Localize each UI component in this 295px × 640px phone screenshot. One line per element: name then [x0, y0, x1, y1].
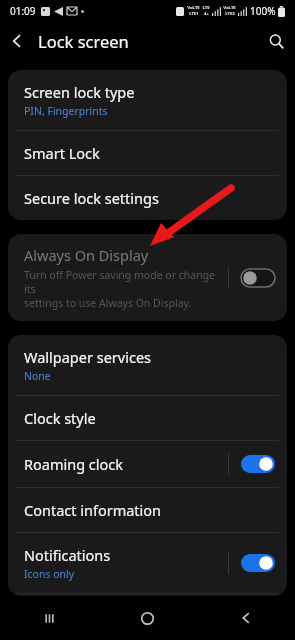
staticText: Turn off Power saving mode or change its: [24, 268, 228, 296]
button[interactable]: Screen lock type: [8, 70, 287, 130]
staticText: settings to use Always On Display.: [24, 296, 192, 310]
button[interactable]: Secure lock settings: [8, 176, 287, 220]
button[interactable]: Recents: [25, 596, 73, 640]
button[interactable]: Back: [0, 24, 34, 58]
staticText: LTE1: [189, 11, 199, 17]
button[interactable]: Search: [257, 22, 295, 60]
staticText: None: [24, 369, 51, 383]
staticText: VoLTE: [223, 5, 236, 11]
staticText: Wallpaper services: [24, 347, 152, 367]
staticText: Lock screen: [38, 30, 129, 52]
staticText: Clock style: [24, 408, 96, 428]
button[interactable]: Always On Display: [8, 234, 287, 321]
button[interactable]: Shortcuts: [8, 594, 287, 596]
button[interactable]: Toggle on: [241, 554, 275, 572]
staticText: Roaming clock: [24, 454, 124, 474]
staticText: Always On Display: [24, 245, 149, 265]
button[interactable]: Contact information: [8, 488, 287, 532]
staticText: LTE2: [225, 11, 235, 17]
button[interactable]: Toggle on: [241, 455, 275, 473]
staticText: Secure lock settings: [24, 188, 159, 208]
button[interactable]: Wallpaper services: [8, 335, 287, 395]
button[interactable]: Back: [222, 596, 270, 640]
staticText: 01:09: [10, 4, 36, 18]
button[interactable]: Toggle off: [241, 269, 275, 287]
staticText: 4+: [204, 11, 209, 17]
staticText: LTE: [202, 5, 210, 11]
staticText: 100%: [250, 4, 276, 18]
button[interactable]: Clock style: [8, 396, 287, 440]
button[interactable]: Home: [123, 596, 171, 640]
staticText: VoLTE: [187, 5, 200, 11]
button[interactable]: Smart Lock: [8, 131, 287, 175]
staticText: PIN, Fingerprints: [24, 104, 108, 118]
staticText: Smart Lock: [24, 143, 100, 163]
staticText: Icons only: [24, 567, 75, 581]
staticText: Notifications: [24, 545, 111, 565]
staticText: Contact information: [24, 500, 162, 520]
button[interactable]: Roaming clock: [8, 441, 287, 487]
staticText: Screen lock type: [24, 82, 135, 102]
button[interactable]: Notifications: [8, 533, 287, 593]
